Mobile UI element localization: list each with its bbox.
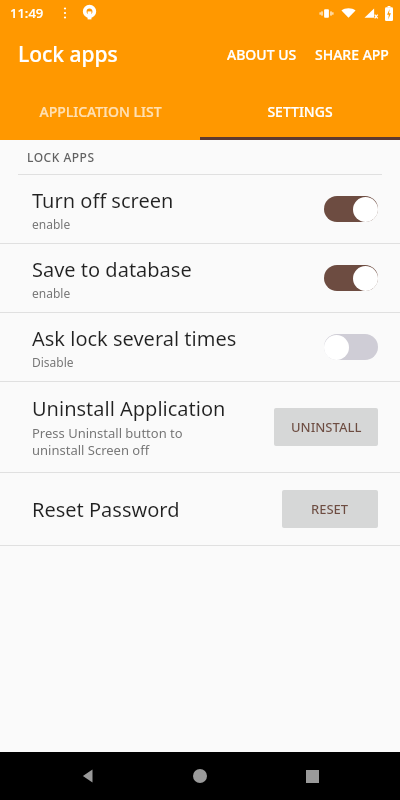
button[interactable]: Uninstall Application (0, 382, 400, 472)
staticText: enable (32, 285, 71, 301)
staticText: Turn off screen (32, 187, 174, 214)
button[interactable]: Ask lock several times (0, 313, 400, 381)
button[interactable]: UNINSTALL (274, 408, 378, 446)
other: On (324, 264, 378, 292)
button[interactable]: Recent apps (288, 752, 336, 800)
staticText: 11:49 (10, 4, 44, 22)
button[interactable]: Reset Password (0, 473, 400, 545)
button[interactable]: SHARE APP (306, 33, 400, 76)
staticText: Lock apps (18, 40, 118, 69)
button[interactable]: SETTINGS (200, 82, 400, 140)
staticText: ABOUT US (227, 45, 297, 64)
staticText: UNINSTALL (291, 418, 362, 436)
button[interactable]: Turn off screen (0, 175, 400, 243)
other: On (324, 195, 378, 223)
button[interactable]: APPLICATION LIST (0, 82, 200, 140)
staticText: LOCK APPS (27, 149, 95, 165)
button[interactable]: RESET (282, 490, 378, 528)
staticText: Save to database (32, 256, 192, 283)
staticText: Press Uninstall button to uninstall Scre… (32, 424, 183, 459)
staticText: Uninstall Application (32, 395, 226, 422)
staticText: SETTINGS (267, 102, 333, 121)
staticText: Disable (32, 354, 74, 370)
staticText: SHARE APP (315, 45, 389, 64)
staticText: APPLICATION LIST (39, 102, 162, 121)
staticText: Ask lock several times (32, 325, 237, 352)
staticText: Reset Password (32, 496, 180, 523)
other: Off (324, 333, 378, 361)
staticText: RESET (311, 500, 349, 518)
button[interactable]: Save to database (0, 244, 400, 312)
button[interactable]: ABOUT US (218, 33, 306, 76)
button[interactable]: Home (176, 752, 224, 800)
button[interactable]: Back (64, 752, 112, 800)
staticText: enable (32, 216, 71, 232)
